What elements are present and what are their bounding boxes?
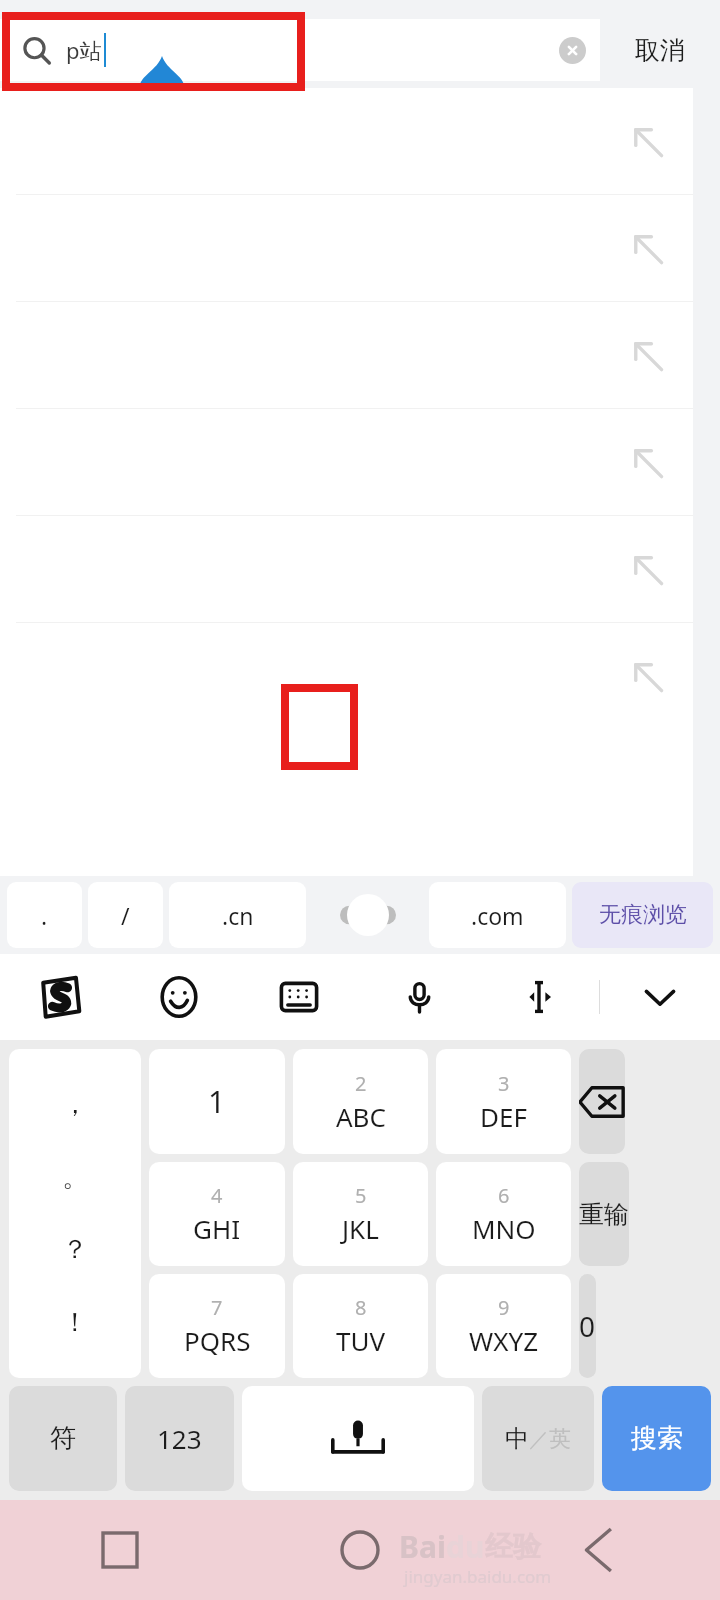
button[interactable]: 1 <box>149 1049 285 1154</box>
staticText: .cn <box>222 900 254 931</box>
other: Fill suggestion <box>631 660 665 694</box>
button[interactable]: Toggle <box>312 882 423 948</box>
button[interactable]: Voice input <box>359 954 479 1040</box>
staticText: 取消 <box>635 35 685 66</box>
button[interactable]: Space / voice <box>242 1386 474 1491</box>
staticText: jingyan.baidu.com <box>404 1565 552 1588</box>
other: Fill suggestion <box>631 553 665 587</box>
button[interactable]: Fill suggestion <box>0 623 693 730</box>
button[interactable]: Backspace <box>579 1049 625 1154</box>
button[interactable]: / <box>88 882 163 948</box>
staticText: 123 <box>157 1421 202 1456</box>
button[interactable]: 0 <box>579 1274 596 1378</box>
staticText: / <box>121 900 130 931</box>
staticText: du <box>446 1526 485 1567</box>
staticText: DEF <box>480 1099 527 1134</box>
staticText: 。 <box>62 1161 88 1194</box>
staticText: TUV <box>336 1323 386 1358</box>
staticText: 符 <box>50 1422 76 1455</box>
staticText: 6 <box>498 1182 510 1209</box>
button[interactable]: . <box>7 882 82 948</box>
staticText: 重输 <box>579 1199 629 1230</box>
other: Fill suggestion <box>631 232 665 266</box>
button[interactable]: 3 <box>436 1049 571 1154</box>
staticText: PQRS <box>184 1323 251 1358</box>
other: Fill suggestion <box>631 125 665 159</box>
staticText: 8 <box>355 1294 367 1321</box>
button[interactable]: Keyboard layout <box>239 954 359 1040</box>
staticText: 搜索 <box>631 1422 683 1455</box>
button[interactable]: 7 <box>149 1274 285 1378</box>
button[interactable]: Move cursor <box>479 954 599 1040</box>
staticText: . <box>41 900 48 931</box>
button[interactable]: 无痕浏览 <box>572 882 713 948</box>
button[interactable]: 123 <box>125 1386 234 1491</box>
button[interactable]: Hide keyboard <box>600 954 720 1040</box>
staticText: ／ <box>529 1427 549 1452</box>
staticText: 中 <box>505 1424 529 1454</box>
button[interactable]: .com <box>429 882 566 948</box>
button[interactable]: .cn <box>169 882 306 948</box>
staticText: JKL <box>342 1211 379 1246</box>
staticText: 3 <box>498 1070 510 1097</box>
button[interactable]: Clear <box>559 37 586 64</box>
staticText: 4 <box>211 1182 223 1209</box>
staticText: ？ <box>62 1233 88 1266</box>
button[interactable]: Recents <box>0 1500 240 1600</box>
staticText: .com <box>471 900 524 931</box>
staticText: ABC <box>336 1099 386 1134</box>
button[interactable]: Emoji <box>119 954 239 1040</box>
button[interactable]: 9 <box>436 1274 571 1378</box>
button[interactable]: p站 <box>0 19 600 81</box>
button[interactable]: Sogou input <box>0 954 119 1040</box>
staticText: 7 <box>211 1294 223 1321</box>
staticText: 经验 <box>485 1529 541 1564</box>
button[interactable]: 5 <box>293 1162 428 1266</box>
staticText: ， <box>62 1088 88 1121</box>
staticText: 英 <box>549 1425 571 1453</box>
button[interactable]: 中 <box>482 1386 594 1491</box>
button[interactable]: Home <box>240 1500 480 1600</box>
other: Fill suggestion <box>631 339 665 373</box>
button[interactable]: 取消 <box>600 19 720 81</box>
staticText: 1 <box>208 1081 226 1122</box>
button[interactable]: Fill suggestion <box>0 88 693 195</box>
staticText: MNO <box>472 1211 536 1246</box>
button[interactable]: 2 <box>293 1049 428 1154</box>
button[interactable]: 8 <box>293 1274 428 1378</box>
button[interactable]: 6 <box>436 1162 571 1266</box>
other: Fill suggestion <box>631 446 665 480</box>
staticText: 2 <box>355 1070 367 1097</box>
staticText: GHI <box>193 1211 241 1246</box>
button[interactable]: 4 <box>149 1162 285 1266</box>
staticText: 5 <box>355 1182 367 1209</box>
button[interactable]: 搜索 <box>602 1386 711 1491</box>
button[interactable]: 重输 <box>579 1162 629 1266</box>
staticText: WXYZ <box>469 1323 539 1358</box>
staticText: ！ <box>62 1306 88 1339</box>
button[interactable]: ， <box>9 1049 141 1378</box>
staticText: 0 <box>579 1307 596 1345</box>
staticText: Bai <box>399 1526 446 1567</box>
staticText: p站 <box>66 35 102 65</box>
button[interactable]: Back <box>480 1500 720 1600</box>
staticText: 9 <box>498 1294 510 1321</box>
button[interactable]: 符 <box>9 1386 117 1491</box>
staticText: 无痕浏览 <box>599 901 687 929</box>
